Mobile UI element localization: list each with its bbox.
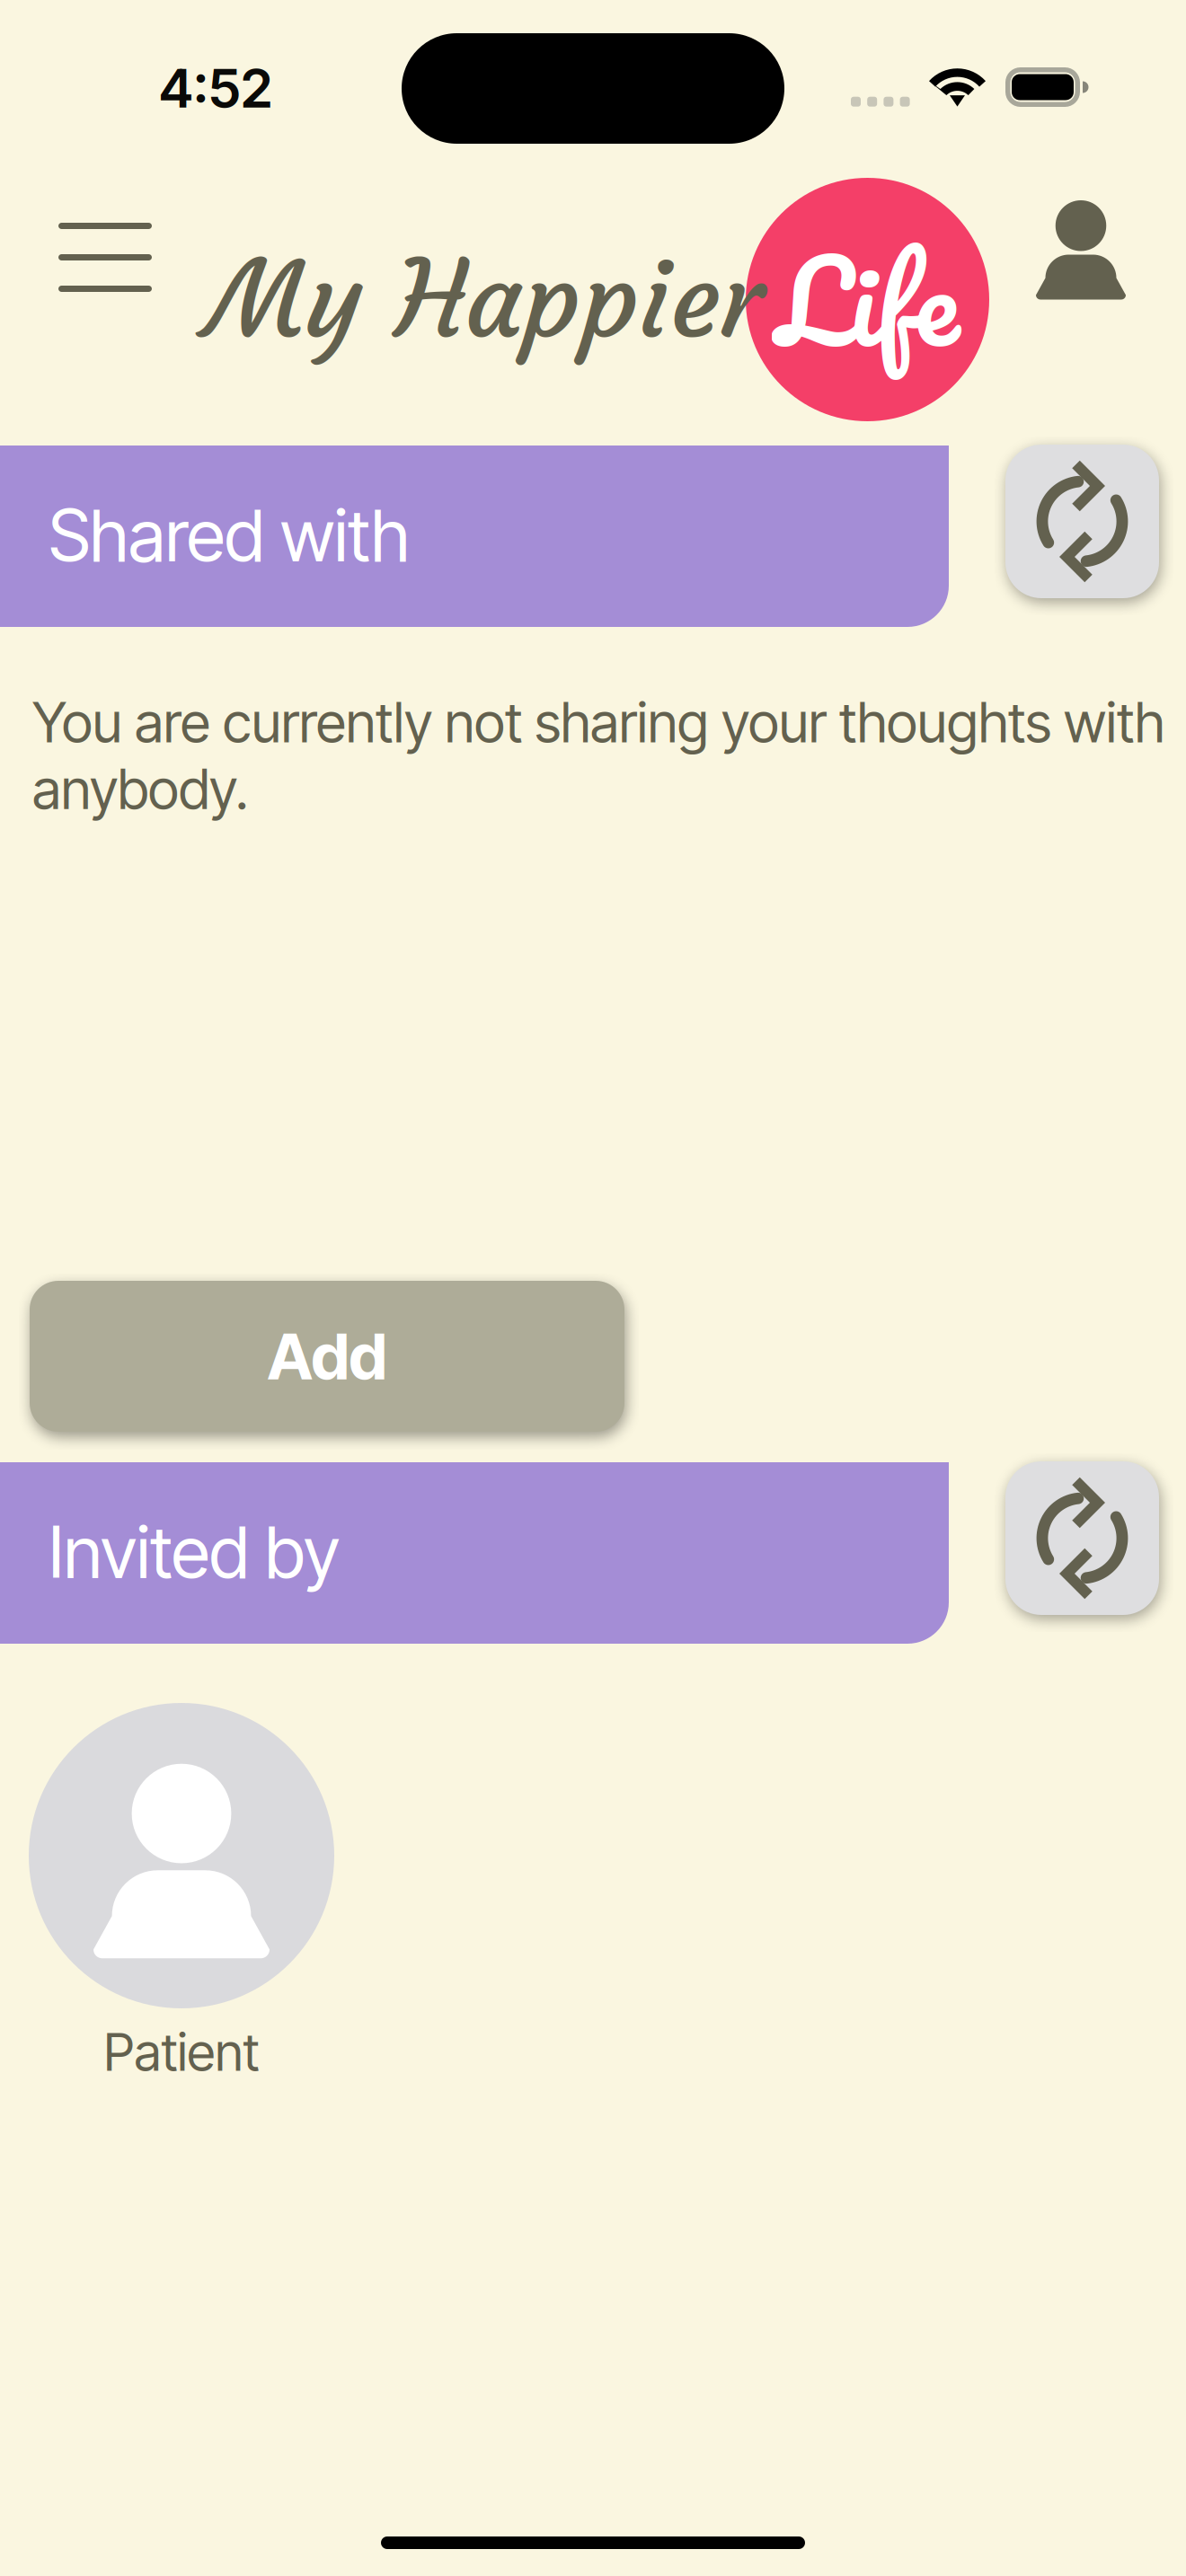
button[interactable]: Menu [40, 205, 170, 310]
staticText: My Happier [207, 234, 763, 365]
staticText: You are currently not sharing your thoug… [32, 689, 1164, 822]
button[interactable]: Patient [29, 1703, 334, 2083]
button[interactable]: Refresh [1005, 1461, 1159, 1615]
button[interactable]: Refresh [1005, 445, 1159, 598]
button[interactable]: Account [1023, 188, 1138, 312]
button[interactable]: Add [30, 1281, 624, 1432]
staticText: Invited by [49, 1509, 340, 1595]
staticText: Shared with [49, 493, 410, 578]
staticText: Add [267, 1318, 387, 1395]
staticText: 4:52 [159, 55, 272, 121]
staticText: Patient [104, 2021, 259, 2083]
staticText: Life [776, 204, 959, 395]
